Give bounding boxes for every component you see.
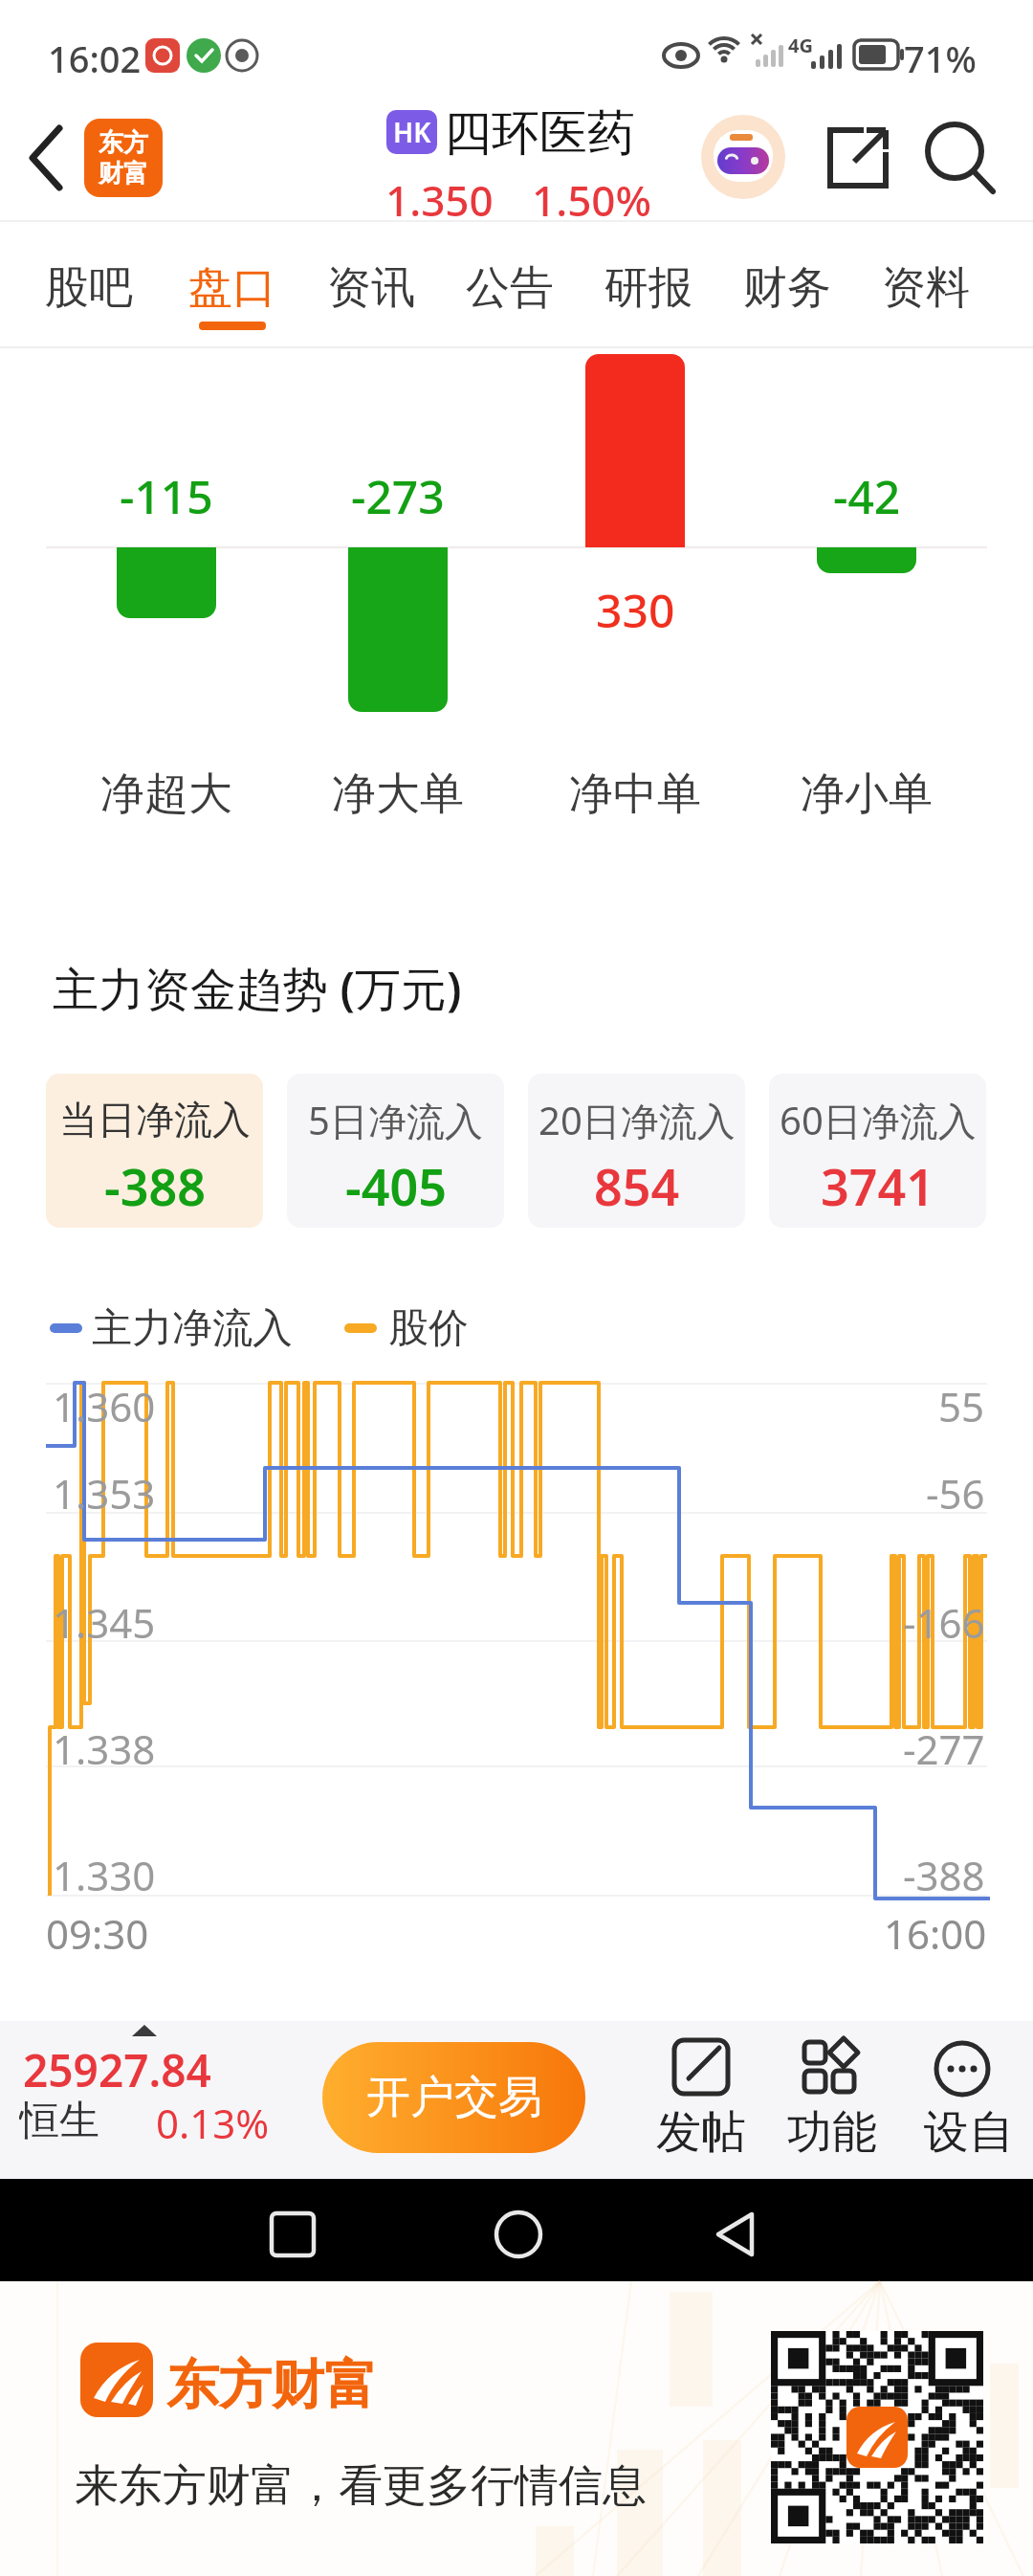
staticText: -42: [833, 465, 901, 522]
staticText: 股吧: [45, 260, 133, 316]
staticText: 盘口: [188, 260, 276, 316]
button[interactable]: [701, 115, 785, 199]
staticText: 功能: [787, 2104, 877, 2161]
staticText: 发帖: [656, 2104, 746, 2161]
staticText: 16:00: [884, 1906, 987, 1960]
staticText: 1.353: [53, 1466, 156, 1520]
staticText: 1.350: [385, 171, 494, 221]
staticText: -115: [120, 465, 213, 522]
staticText: 当日净流入: [59, 1096, 251, 1144]
staticText: -405: [345, 1152, 447, 1211]
staticText: 20日净流入: [538, 1094, 736, 1146]
button[interactable]: 资料: [880, 235, 972, 341]
staticText: 净超大: [100, 766, 232, 822]
button[interactable]: 公告: [464, 235, 556, 341]
button[interactable]: [0, 2021, 306, 2179]
staticText: 25927.84: [23, 2040, 211, 2094]
button[interactable]: [631, 2179, 861, 2281]
staticText: 主力净流入: [92, 1303, 293, 1354]
staticText: 09:30: [46, 1906, 149, 1960]
staticText: 1.338: [53, 1721, 156, 1775]
staticText: 16:02: [48, 33, 142, 77]
button[interactable]: 设自: [905, 2029, 1033, 2167]
button[interactable]: 盘口: [187, 235, 278, 341]
staticText: 71%: [904, 33, 977, 77]
staticText: 1.360: [53, 1379, 156, 1432]
staticText: 财务: [743, 260, 831, 316]
staticText: 60日净流入: [780, 1094, 977, 1146]
staticText: 四环医药: [444, 103, 635, 163]
staticText: 330: [596, 579, 675, 636]
staticText: -388: [104, 1152, 206, 1211]
button[interactable]: 5日净流入: [287, 1074, 504, 1228]
button[interactable]: 东方 财富: [84, 119, 163, 197]
button[interactable]: 20日净流入: [528, 1074, 745, 1228]
button[interactable]: 当日净流入: [46, 1074, 263, 1228]
staticText: 东方财富: [166, 2352, 377, 2415]
staticText: 净大单: [332, 766, 464, 822]
staticText: 5日净流入: [308, 1094, 483, 1146]
staticText: 来东方财富，看更多行情信息: [75, 2458, 647, 2514]
staticText: -166: [903, 1595, 985, 1649]
staticText: 0.13%: [156, 2096, 270, 2145]
staticText: 开户交易: [366, 2070, 542, 2125]
staticText: 1.330: [53, 1848, 156, 1901]
staticText: 55: [938, 1379, 985, 1432]
staticText: 3741: [821, 1152, 934, 1211]
button[interactable]: [920, 117, 999, 195]
staticText: 公告: [466, 260, 554, 316]
button[interactable]: 功能: [774, 2029, 890, 2167]
staticText: HK: [393, 114, 431, 150]
staticText: 设自: [924, 2104, 1014, 2161]
staticText: 1.50%: [532, 171, 651, 221]
staticText: 研报: [604, 260, 692, 316]
staticText: 资讯: [327, 260, 415, 316]
staticText: 东方 财富: [99, 127, 148, 189]
staticText: 主力资金趋势 (万元): [53, 957, 462, 1020]
staticText: 1.345: [53, 1595, 156, 1649]
staticText: -277: [903, 1721, 985, 1775]
button[interactable]: [19, 120, 77, 196]
staticText: 4G: [788, 33, 813, 54]
button[interactable]: [402, 2179, 631, 2281]
button[interactable]: 资讯: [325, 235, 417, 341]
button[interactable]: 发帖: [643, 2029, 759, 2167]
button[interactable]: [172, 2179, 402, 2281]
button[interactable]: 60日净流入: [769, 1074, 986, 1228]
button[interactable]: 股吧: [43, 235, 135, 341]
staticText: 净中单: [569, 766, 701, 822]
staticText: -273: [351, 465, 445, 522]
staticText: 股价: [388, 1303, 469, 1354]
staticText: 恒生: [19, 2096, 99, 2145]
button[interactable]: 财务: [741, 235, 833, 341]
staticText: 净小单: [801, 766, 933, 822]
staticText: 854: [594, 1152, 680, 1211]
staticText: -56: [926, 1466, 985, 1520]
staticText: -388: [903, 1848, 985, 1901]
staticText: 资料: [882, 260, 970, 316]
button[interactable]: 开户交易: [322, 2042, 585, 2153]
button[interactable]: 研报: [603, 235, 694, 341]
button[interactable]: [823, 122, 891, 191]
